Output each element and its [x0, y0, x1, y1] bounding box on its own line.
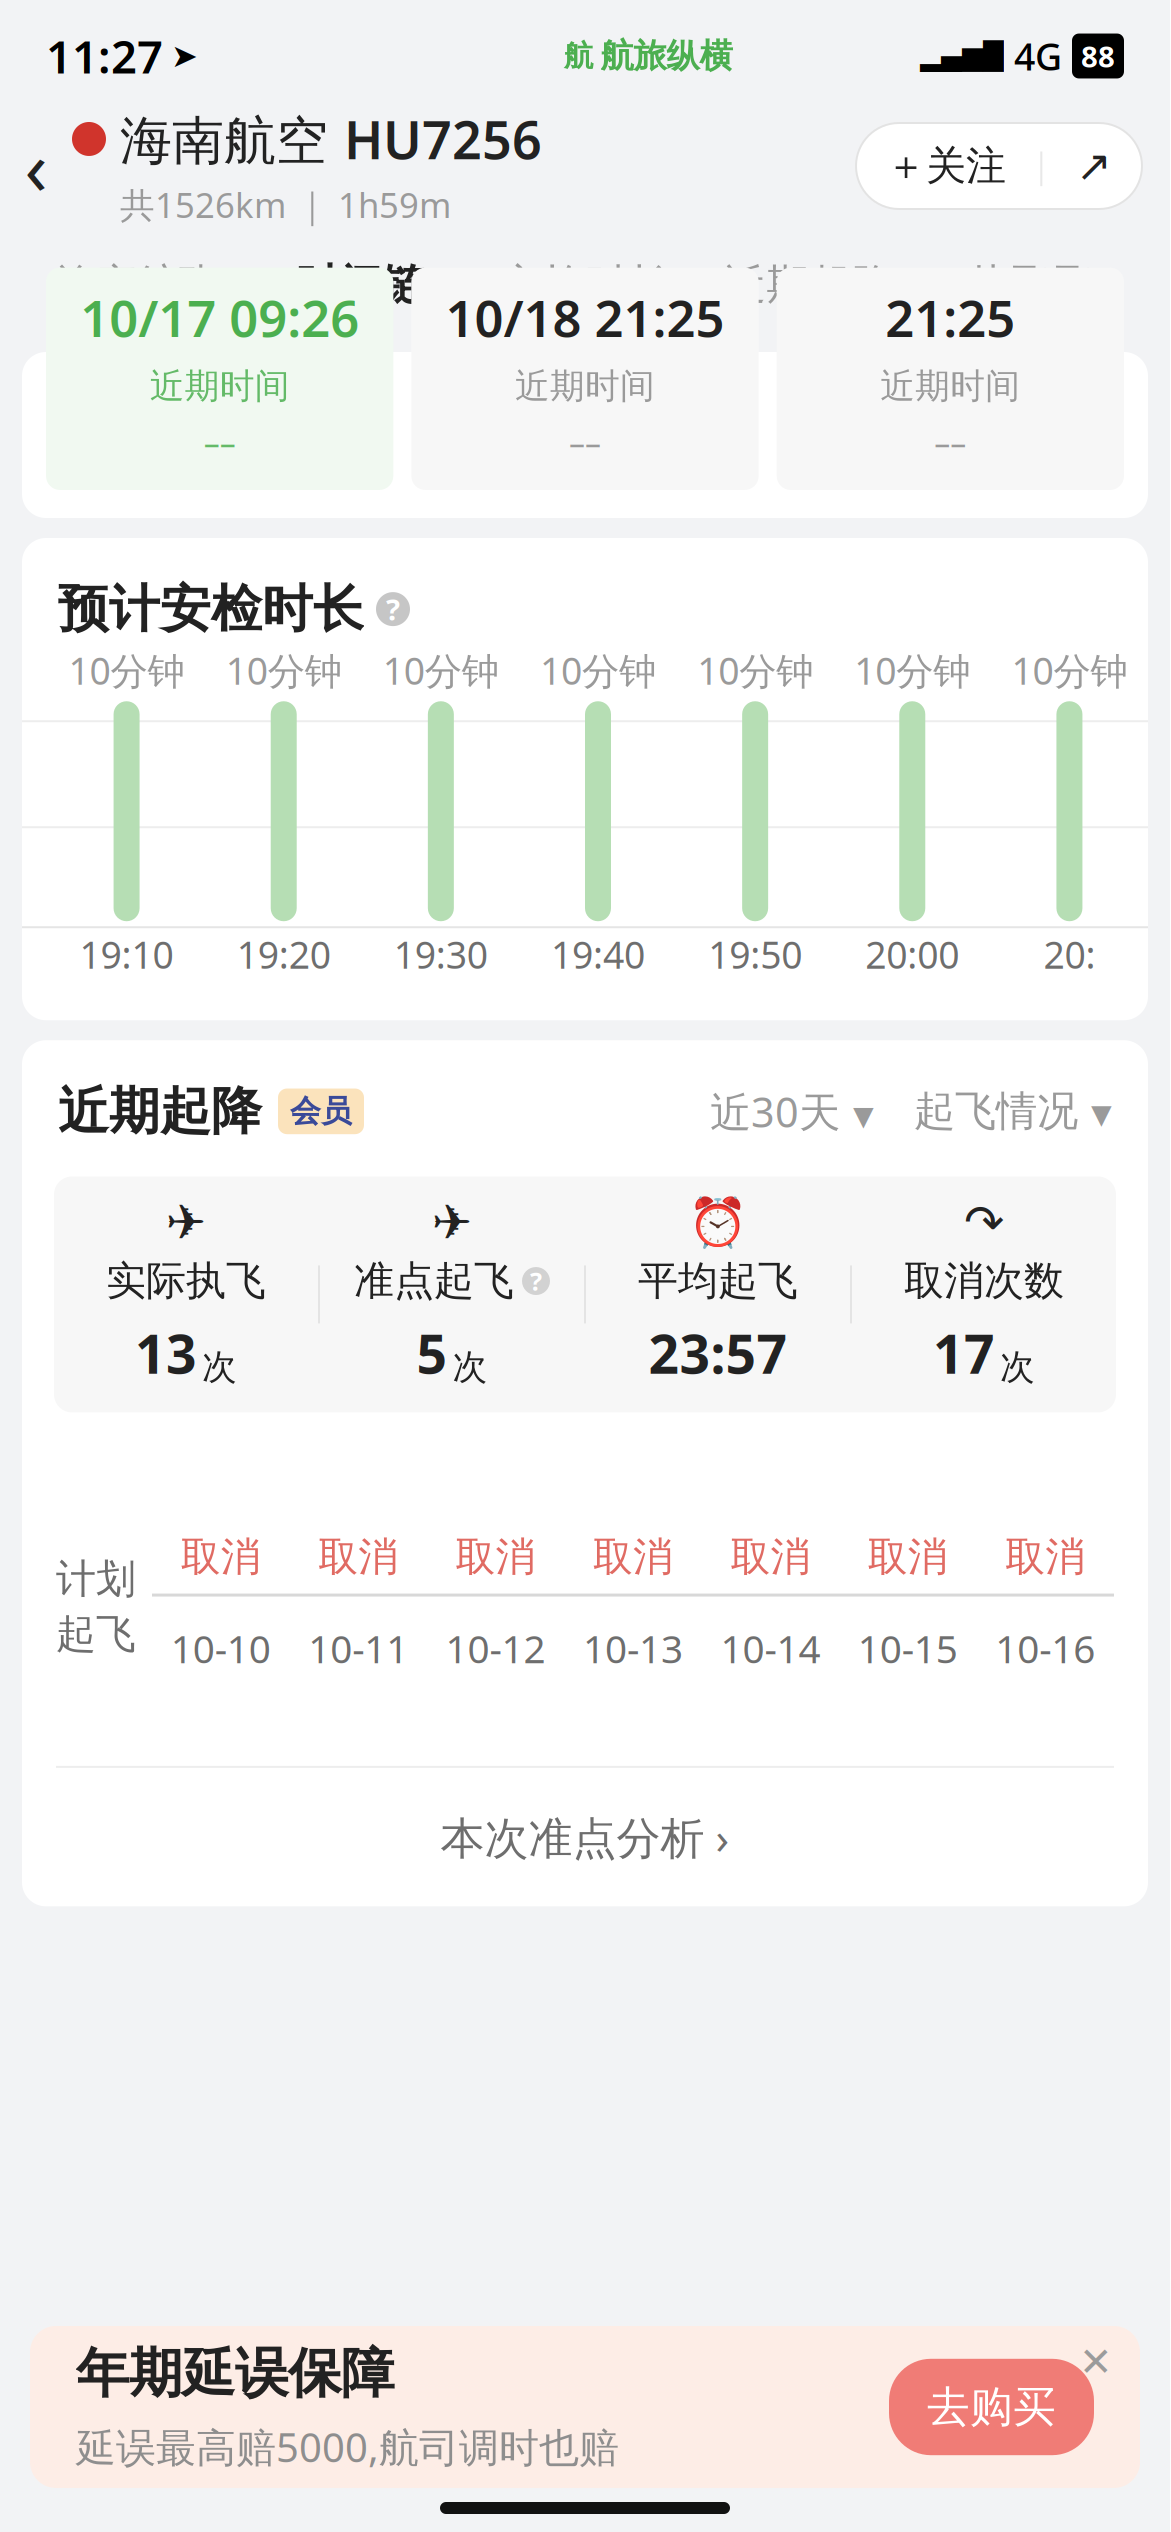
staticText: 19:50 [708, 929, 802, 979]
button[interactable]: 近30天 ▾ [710, 1084, 874, 1139]
staticText: 近期时间 [150, 365, 290, 407]
staticText: 会员 [290, 1092, 352, 1130]
staticText: 近期起降 [58, 1080, 262, 1142]
staticText: 预计安检时长 [58, 578, 364, 640]
staticText: 年期延误保障 [76, 2341, 394, 2406]
staticText: 延误最高赔5000,航司调时也赔 [76, 2420, 619, 2473]
staticText: 取消 [730, 1532, 810, 1581]
staticText: 13 [135, 1318, 197, 1388]
staticText: 起飞 [56, 1610, 136, 1659]
staticText: 次 [202, 1346, 237, 1388]
staticText: ? [530, 1264, 542, 1298]
staticText: 10分钟 [383, 645, 499, 695]
staticText: ↷ [964, 1195, 1004, 1250]
staticText: 时间链 [296, 259, 425, 311]
staticText: 88 [1081, 36, 1115, 75]
staticText: 10/18 21:25 [445, 284, 724, 351]
staticText: 10/17 09:26 [80, 284, 359, 351]
staticText: 10-10 [171, 1623, 271, 1674]
staticText: 次 [452, 1346, 487, 1388]
staticText: ⏰ [688, 1195, 748, 1250]
staticText: 近期时间 [515, 365, 655, 407]
staticText: 取消 [868, 1532, 948, 1581]
staticText: 航旅纵横 [600, 35, 732, 76]
staticText: 取消次数 [904, 1256, 1064, 1306]
staticText: 10分钟 [226, 645, 342, 695]
staticText: ✈ [166, 1195, 206, 1250]
button[interactable]: 关闭 [1066, 2332, 1126, 2392]
staticText: ✕ [1079, 2339, 1113, 2385]
staticText: 10-13 [583, 1623, 683, 1674]
staticText: 次 [1000, 1346, 1035, 1388]
staticText: 起飞情况 ▾ [914, 1086, 1112, 1137]
button[interactable]: 前序航班 [24, 251, 248, 341]
button[interactable]: ＋关注 [856, 123, 1142, 209]
staticText: 去购买 [927, 2381, 1056, 2433]
staticText: 20:00 [865, 929, 959, 979]
staticText: 取消 [318, 1532, 398, 1581]
staticText: ▂▄▆█ [920, 41, 1004, 71]
staticText: –– [204, 421, 236, 464]
button[interactable]: 时间链 [248, 251, 473, 341]
staticText: 10-16 [995, 1623, 1095, 1674]
staticText: 10分钟 [1011, 645, 1127, 695]
staticText: 执飞飞 [969, 259, 1098, 311]
staticText: 平均起飞 [638, 1256, 798, 1306]
staticText: 安检时长 [499, 259, 671, 311]
staticText: 10分钟 [69, 645, 185, 695]
staticText: ✈ [432, 1195, 472, 1250]
staticText: 21:25 [885, 284, 1015, 351]
button[interactable]: 安检时长说明 [376, 592, 410, 626]
staticText: –– [934, 421, 966, 464]
staticText: 实际执飞 [106, 1256, 266, 1306]
staticText: 10-14 [720, 1623, 820, 1674]
staticText: 10分钟 [854, 645, 970, 695]
button[interactable]: 安检时长 [473, 251, 697, 341]
staticText: 19:40 [551, 929, 645, 979]
staticText: 19:20 [237, 929, 331, 979]
staticText: ➤ [171, 38, 198, 74]
staticText: –– [569, 421, 601, 464]
staticText: 共1526km ｜ 1h59m [120, 181, 451, 227]
staticText: ? [386, 590, 400, 629]
staticText: 10-11 [308, 1623, 408, 1674]
staticText: 20: [1043, 929, 1095, 979]
staticText: 23:57 [648, 1318, 787, 1388]
staticText: 近期时间 [880, 365, 1020, 407]
staticText: 海南航空 HU7256 [120, 104, 542, 174]
button[interactable]: 返回 [0, 122, 72, 210]
staticText: 近30天 ▾ [710, 1084, 874, 1139]
staticText: 本次准点分析 › [440, 1808, 729, 1866]
staticText: 5 [416, 1318, 447, 1388]
staticText: 取消 [181, 1532, 261, 1581]
staticText: 取消 [456, 1532, 536, 1581]
staticText: 19:10 [80, 929, 174, 979]
staticText: 17 [933, 1318, 995, 1388]
staticText: 前序航班 [50, 259, 222, 311]
staticText: ‹ [24, 116, 47, 216]
staticText: 航 [564, 38, 593, 74]
staticText: 10分钟 [697, 645, 813, 695]
button[interactable]: 近期起降 [697, 251, 922, 341]
staticText: 10-15 [858, 1623, 958, 1674]
staticText: 取消 [593, 1532, 673, 1581]
staticText: 计划 [56, 1554, 136, 1603]
staticText: 10分钟 [540, 645, 656, 695]
staticText: 准点起飞 [354, 1256, 514, 1306]
staticText: 4G [1014, 31, 1062, 81]
button[interactable]: 本次准点分析 › [22, 1768, 1148, 1906]
staticText: 10-12 [446, 1623, 546, 1674]
staticText: ↗ [1076, 142, 1112, 190]
button[interactable]: 执飞飞 [922, 251, 1146, 341]
staticText: 取消 [1005, 1532, 1085, 1581]
button[interactable]: 起飞情况 ▾ [874, 1086, 1112, 1137]
staticText: 11:27 [46, 26, 163, 86]
staticText: ｜ [1024, 145, 1058, 187]
button[interactable]: 去购买 [889, 2359, 1094, 2455]
staticText: ＋关注 [886, 141, 1006, 190]
staticText: 19:30 [394, 929, 488, 979]
staticText: 近期起降 [723, 259, 895, 311]
